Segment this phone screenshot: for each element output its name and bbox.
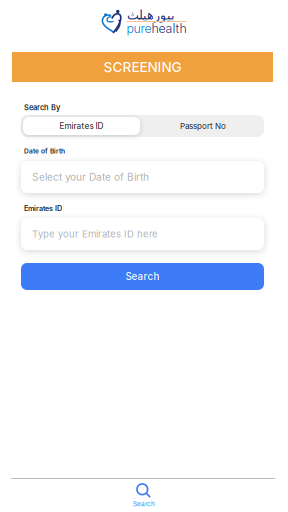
- staticText: بيورهيلث: [126, 8, 174, 22]
- button[interactable]: Select your Date of Birth: [21, 161, 264, 193]
- staticText: Emirates ID: [59, 121, 103, 131]
- staticText: Search By: [24, 103, 60, 112]
- button[interactable]: Search: [0, 483, 288, 508]
- staticText: Search: [133, 500, 155, 508]
- staticText: Select your Date of Birth: [32, 171, 149, 183]
- staticText: Search: [125, 270, 159, 282]
- staticText: Date of Birth: [24, 147, 65, 155]
- staticText: pure: [126, 21, 151, 36]
- button[interactable]: Emirates ID: [21, 115, 142, 137]
- button[interactable]: Passport No: [142, 115, 264, 137]
- staticText: Emirates ID: [24, 204, 62, 213]
- button[interactable]: Search: [21, 263, 264, 290]
- staticText: health: [151, 21, 186, 36]
- staticText: Type your Emirates ID here: [32, 228, 158, 240]
- button[interactable]: Type your Emirates ID here: [21, 218, 264, 250]
- staticText: SCREENING: [103, 59, 181, 75]
- staticText: Passport No: [180, 121, 226, 131]
